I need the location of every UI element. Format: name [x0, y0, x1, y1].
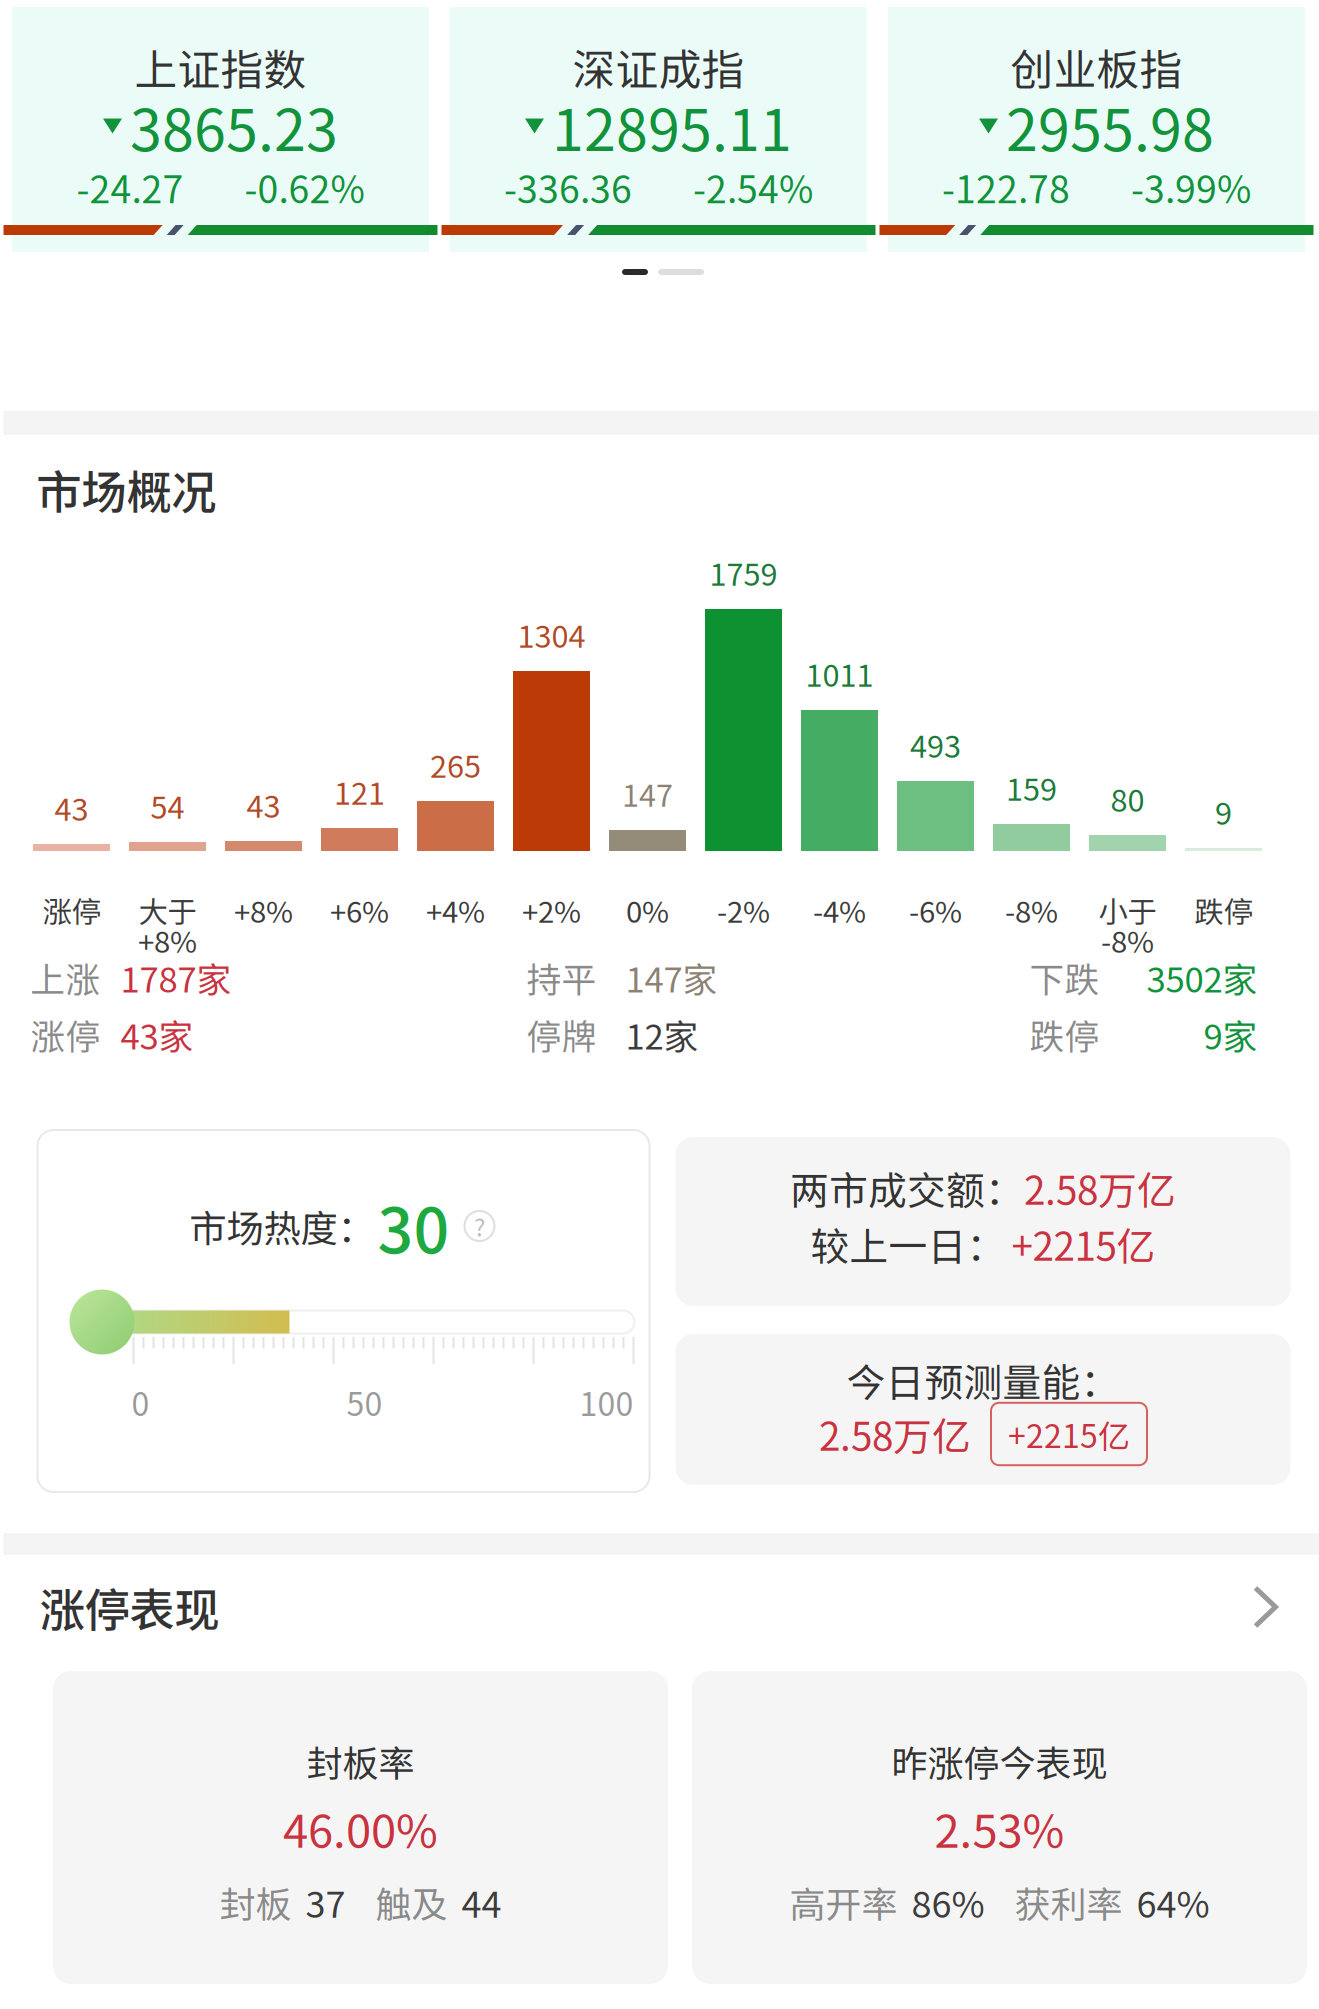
staticText: 80	[1110, 776, 1144, 821]
staticText: 涨停表现	[39, 1574, 219, 1640]
staticText: 创业板指	[1010, 36, 1182, 98]
staticText: -8%	[1005, 889, 1058, 931]
staticText: 2955.98	[1006, 84, 1214, 167]
staticText: 小于	[1098, 889, 1156, 931]
staticText: 封板	[219, 1876, 291, 1928]
staticText: 265	[430, 742, 481, 787]
staticText: 获利率	[1014, 1876, 1122, 1928]
staticText: 跌停	[1194, 889, 1252, 931]
staticText: -0.62%	[244, 160, 364, 214]
staticText: 2.53%	[934, 1795, 1064, 1861]
staticText: 9	[1215, 789, 1232, 834]
staticText: 43	[246, 782, 280, 827]
staticText: 147家	[625, 952, 717, 1003]
staticText: 1011	[805, 651, 873, 696]
staticText: +2215亿	[1011, 1216, 1155, 1272]
staticText: 昨涨停今表现	[891, 1735, 1107, 1787]
staticText: 停牌	[526, 1009, 596, 1060]
staticText: -336.36	[504, 160, 632, 214]
staticText: +6%	[330, 889, 389, 931]
staticText: 3502家	[1146, 952, 1257, 1003]
button[interactable]: 上证指数	[12, 7, 429, 252]
staticText: 43家	[120, 1009, 193, 1060]
staticText: 12家	[625, 1009, 698, 1060]
staticText: 市场热度：	[189, 1199, 374, 1253]
staticText: 43	[54, 785, 88, 830]
staticText: 100	[579, 1379, 633, 1425]
staticText: -8%	[1101, 919, 1154, 961]
staticText: +8%	[234, 889, 293, 931]
staticText: 触及	[375, 1876, 447, 1928]
button[interactable]: 深证成指	[450, 7, 867, 252]
staticText: 1787家	[120, 952, 231, 1003]
button[interactable]: 查看涨停表现详情	[1241, 1574, 1289, 1640]
staticText: 0	[131, 1379, 149, 1425]
staticText: 持平	[526, 952, 596, 1003]
staticText: 50	[346, 1379, 382, 1425]
staticText: 较上一日：	[810, 1216, 1005, 1272]
staticText: 涨停	[30, 1009, 100, 1060]
staticText: 3865.23	[130, 84, 338, 167]
staticText: 2.58万亿	[819, 1406, 971, 1462]
staticText: +2%	[522, 889, 581, 931]
staticText: 下跌	[1029, 952, 1099, 1003]
staticText: +4%	[426, 889, 485, 931]
staticText: 12895.11	[552, 84, 792, 167]
staticText: 86%	[911, 1876, 984, 1928]
staticText: 159	[1006, 765, 1057, 810]
staticText: 64%	[1136, 1876, 1209, 1928]
button[interactable]: 封板率	[53, 1671, 668, 1984]
staticText: +8%	[138, 919, 197, 961]
staticText: 封板率	[306, 1735, 414, 1787]
staticText: 30	[377, 1181, 449, 1271]
staticText: -4%	[813, 889, 866, 931]
staticText: +2215亿	[1008, 1411, 1130, 1457]
staticText: ?	[474, 1209, 485, 1243]
staticText: 两市成交额：	[790, 1160, 1024, 1216]
staticText: 2.58万亿	[1024, 1160, 1176, 1216]
staticText: 121	[334, 769, 385, 814]
staticText: 44	[461, 1876, 501, 1928]
staticText: -2%	[717, 889, 770, 931]
staticText: -2.54%	[693, 160, 813, 214]
staticText: 市场概况	[36, 456, 216, 522]
staticText: -3.99%	[1131, 160, 1251, 214]
staticText: 上证指数	[134, 36, 306, 98]
staticText: 1759	[709, 550, 777, 595]
button[interactable]: 昨涨停今表现	[692, 1671, 1307, 1984]
staticText: 大于	[138, 889, 196, 931]
staticText: -24.27	[76, 160, 183, 214]
staticText: -6%	[909, 889, 962, 931]
staticText: 147	[622, 771, 673, 816]
staticText: 涨停	[42, 889, 100, 931]
staticText: 深证成指	[572, 36, 744, 98]
staticText: 493	[910, 722, 961, 767]
staticText: 46.00%	[283, 1795, 438, 1861]
staticText: 跌停	[1029, 1009, 1099, 1060]
staticText: 1304	[517, 612, 585, 657]
staticText: 9家	[1203, 1009, 1257, 1060]
staticText: -122.78	[942, 160, 1070, 214]
staticText: 上涨	[30, 952, 100, 1003]
staticText: 今日预测量能：	[846, 1352, 1119, 1408]
staticText: 高开率	[789, 1876, 897, 1928]
staticText: 54	[150, 783, 184, 828]
staticText: 37	[305, 1876, 345, 1928]
button[interactable]: 创业板指	[888, 7, 1305, 252]
staticText: 0%	[626, 889, 669, 931]
